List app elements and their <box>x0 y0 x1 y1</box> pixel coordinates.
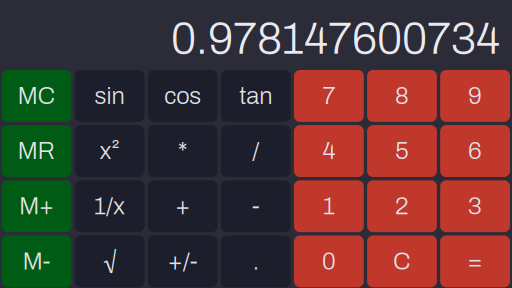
staticText: = <box>468 248 483 274</box>
staticText: 6 <box>468 138 482 164</box>
staticText: + <box>175 193 190 219</box>
button[interactable]: . <box>221 235 291 287</box>
staticText: 4 <box>322 138 335 164</box>
button[interactable]: 2 <box>367 180 437 232</box>
button[interactable]: 8 <box>367 70 437 122</box>
button[interactable]: - <box>221 180 291 232</box>
staticText: M- <box>22 248 50 274</box>
staticText: - <box>252 193 260 219</box>
button[interactable]: C <box>367 235 437 287</box>
staticText: 0 <box>322 248 336 274</box>
staticText: √ <box>103 248 116 274</box>
button[interactable]: tan <box>221 70 291 122</box>
staticText: 1 <box>323 193 335 219</box>
button[interactable]: MC <box>2 70 71 122</box>
staticText: 3 <box>468 193 482 219</box>
staticText: 8 <box>395 83 409 109</box>
staticText: . <box>253 248 259 274</box>
button[interactable]: 6 <box>440 125 510 177</box>
button[interactable]: / <box>221 125 291 177</box>
staticText: / <box>252 138 259 164</box>
button[interactable]: √ <box>75 235 144 287</box>
button[interactable]: sin <box>75 70 144 122</box>
button[interactable]: M+ <box>2 180 71 232</box>
staticText: MR <box>17 138 55 164</box>
button[interactable]: cos <box>148 70 218 122</box>
staticText: tan <box>239 83 272 109</box>
button[interactable]: x² <box>75 125 144 177</box>
staticText: 7 <box>322 83 335 109</box>
button[interactable]: 0 <box>294 235 364 287</box>
button[interactable]: M- <box>2 235 71 287</box>
staticText: 5 <box>395 138 409 164</box>
button[interactable]: 3 <box>440 180 510 232</box>
button[interactable]: 7 <box>294 70 364 122</box>
staticText: 9 <box>468 83 482 109</box>
staticText: * <box>178 138 188 164</box>
button[interactable]: 1 <box>294 180 364 232</box>
button[interactable]: = <box>440 235 510 287</box>
staticText: 0.978147600734 <box>171 15 500 63</box>
staticText: M+ <box>19 193 54 219</box>
button[interactable]: * <box>148 125 218 177</box>
staticText: x² <box>100 138 120 164</box>
button[interactable]: +/- <box>148 235 218 287</box>
button[interactable]: 5 <box>367 125 437 177</box>
staticText: 2 <box>395 193 409 219</box>
staticText: MC <box>17 83 55 109</box>
staticText: sin <box>95 83 125 109</box>
staticText: +/- <box>168 248 198 274</box>
staticText: 1/x <box>94 193 125 219</box>
button[interactable]: 9 <box>440 70 510 122</box>
button[interactable]: MR <box>2 125 71 177</box>
staticText: cos <box>164 83 201 109</box>
button[interactable]: 4 <box>294 125 364 177</box>
staticText: C <box>393 248 411 274</box>
button[interactable]: 1/x <box>75 180 144 232</box>
button[interactable]: + <box>148 180 218 232</box>
